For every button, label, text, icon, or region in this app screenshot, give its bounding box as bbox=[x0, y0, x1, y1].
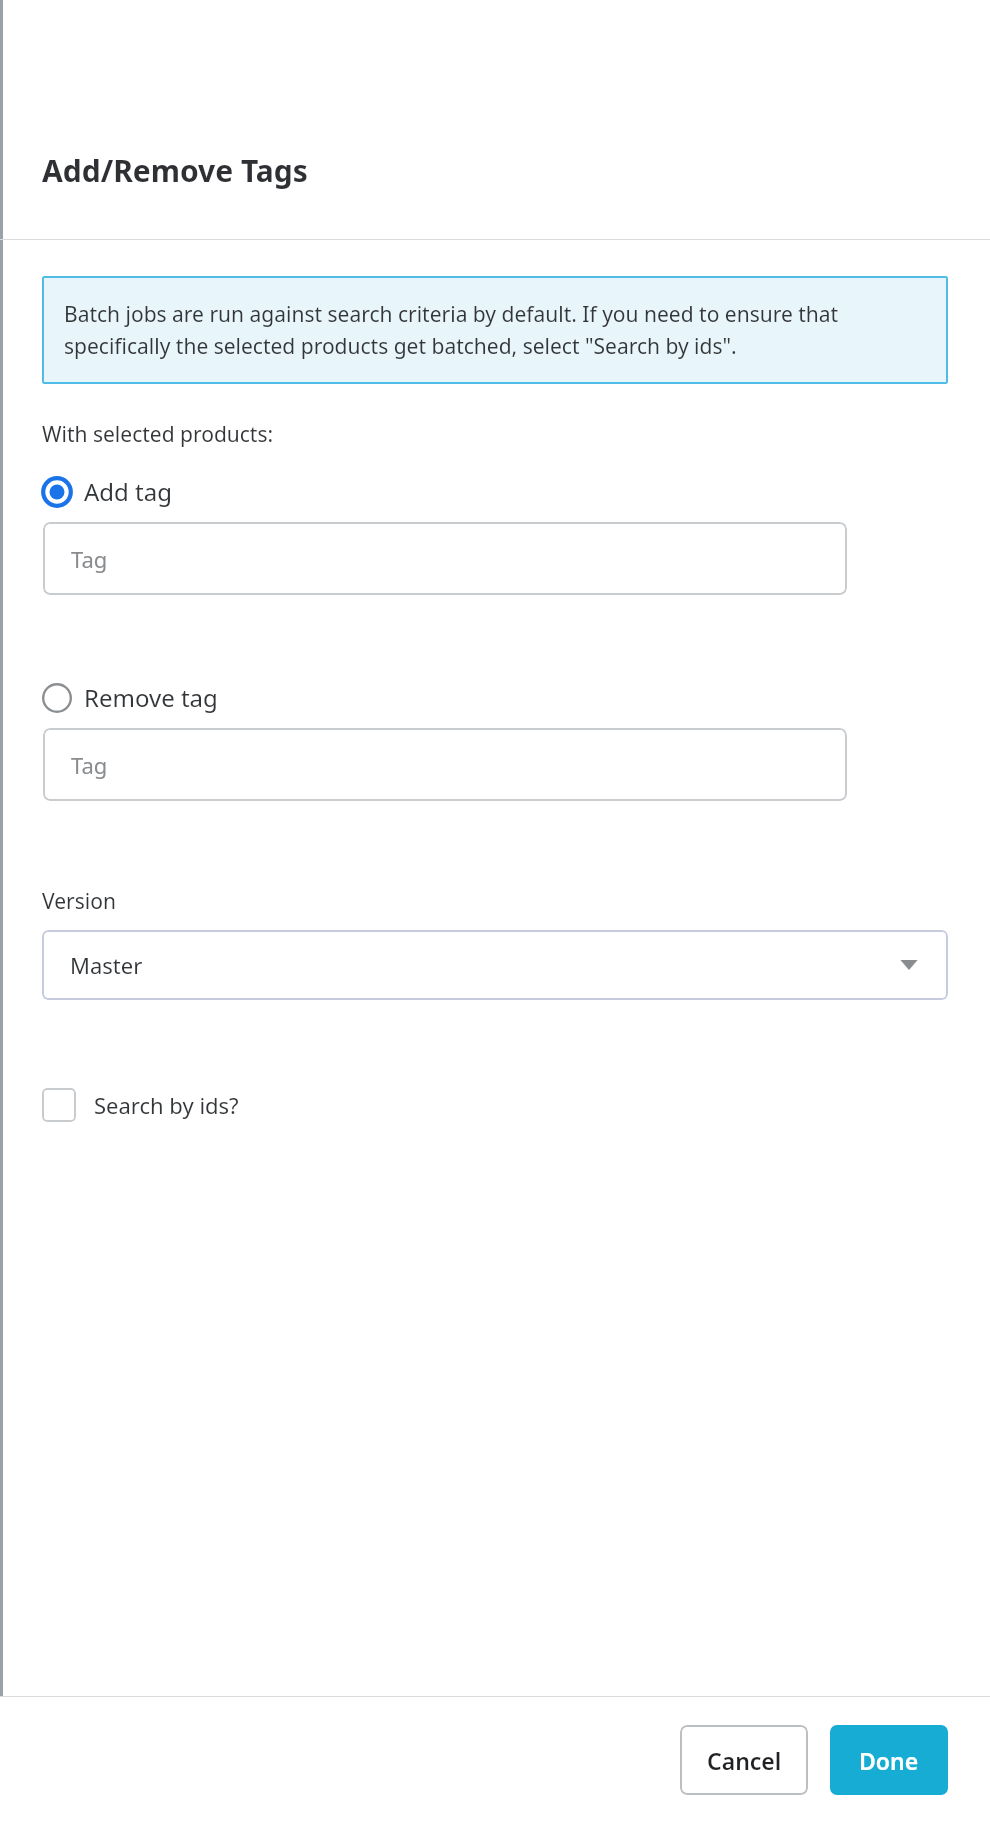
staticText: Add tag bbox=[84, 475, 172, 508]
button[interactable]: Remove tag bbox=[42, 681, 218, 714]
staticText: Master bbox=[70, 950, 143, 980]
staticText: Cancel bbox=[707, 1745, 782, 1776]
staticText: Version bbox=[42, 887, 116, 916]
button[interactable]: Add tag bbox=[42, 475, 172, 508]
other: Open version dropdown bbox=[898, 954, 920, 976]
staticText: Add/Remove Tags bbox=[42, 150, 308, 191]
staticText: With selected products: bbox=[42, 420, 274, 449]
button[interactable]: Tag bbox=[43, 522, 847, 595]
staticText: Tag bbox=[71, 544, 108, 574]
button[interactable]: Master bbox=[42, 930, 948, 1000]
staticText: Done bbox=[859, 1745, 919, 1776]
button[interactable]: Tag bbox=[43, 728, 847, 801]
button[interactable]: Search by ids? bbox=[42, 1088, 239, 1122]
staticText: Remove tag bbox=[84, 681, 218, 714]
staticText: Tag bbox=[71, 750, 108, 780]
staticText: Batch jobs are run against search criter… bbox=[64, 300, 926, 360]
button[interactable]: Done bbox=[830, 1725, 948, 1795]
staticText: Search by ids? bbox=[94, 1090, 239, 1120]
button[interactable]: Cancel bbox=[680, 1725, 808, 1795]
